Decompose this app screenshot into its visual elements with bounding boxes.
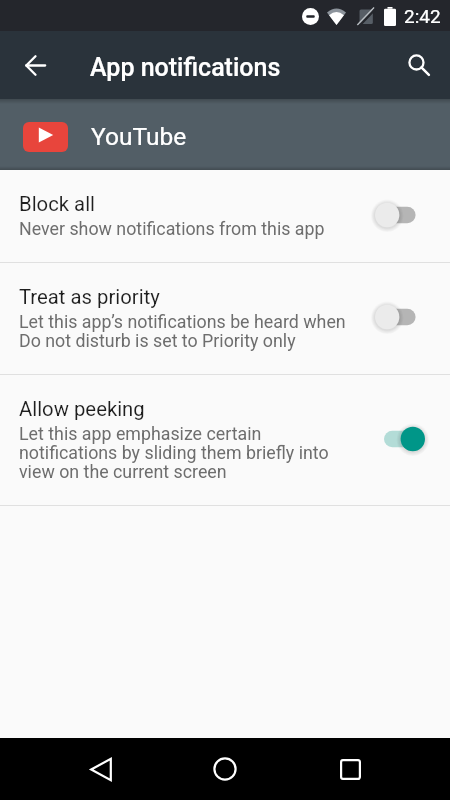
staticText: Let this app’s notifications be heard wh… <box>19 313 346 332</box>
button[interactable]: Recent apps <box>324 741 380 797</box>
button[interactable]: Block all <box>0 170 450 262</box>
button[interactable]: Allow peeking <box>0 375 450 505</box>
button[interactable]: Navigate up <box>12 42 59 89</box>
button[interactable]: On <box>375 426 425 452</box>
staticText: Never show notifications from this app <box>19 220 325 239</box>
button[interactable]: YouTube <box>0 99 450 170</box>
button[interactable]: Off <box>375 202 425 228</box>
button[interactable]: Off <box>375 304 425 330</box>
staticText: YouTube <box>91 122 187 151</box>
staticText: Allow peeking <box>19 399 145 421</box>
button[interactable]: Search <box>395 41 442 88</box>
button[interactable]: Home <box>197 741 253 797</box>
staticText: Let this app emphasize certain <box>19 425 262 444</box>
staticText: Do not disturb is set to Priority only <box>19 332 296 351</box>
button[interactable]: Treat as priority <box>0 263 450 374</box>
button[interactable]: Back <box>71 741 127 797</box>
staticText: notifications by sliding them briefly in… <box>19 444 329 463</box>
staticText: Block all <box>19 194 96 216</box>
staticText: App notifications <box>90 53 281 82</box>
staticText: view on the current screen <box>19 463 227 482</box>
staticText: 2:42 <box>404 5 441 27</box>
staticText: Treat as priority <box>19 287 160 309</box>
